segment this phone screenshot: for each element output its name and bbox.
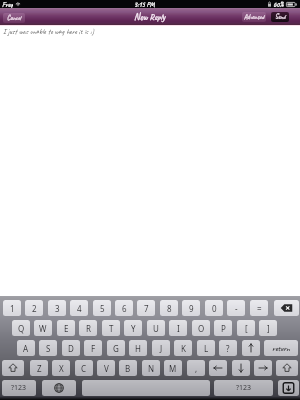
button[interactable]: Shift (276, 360, 298, 376)
staticText: T (109, 323, 114, 334)
button[interactable]: Left (209, 360, 227, 376)
button[interactable]: V (97, 360, 115, 376)
staticText: J (160, 343, 163, 354)
staticText: Freq (2, 0, 13, 8)
staticText: ?123 (11, 383, 27, 393)
button[interactable]: 9 (182, 300, 200, 316)
staticText: E (64, 323, 69, 334)
button[interactable]: Cancel (3, 13, 25, 23)
staticText: ?123 (236, 383, 252, 393)
button[interactable]: J (152, 340, 170, 356)
staticText: H (135, 343, 141, 354)
button[interactable]: ?123 (214, 380, 273, 396)
button[interactable]: 6 (115, 300, 133, 316)
button[interactable]: Q (12, 320, 30, 336)
staticText: W (39, 323, 47, 334)
staticText: F (91, 343, 96, 354)
button[interactable]: C (75, 360, 93, 376)
staticText: [ (245, 323, 248, 334)
staticText: P (221, 323, 226, 334)
button[interactable]: return (264, 340, 298, 356)
staticText: G (113, 343, 119, 354)
button[interactable]: 4 (70, 300, 88, 316)
button[interactable]: W (34, 320, 52, 336)
staticText: B (125, 363, 131, 374)
button[interactable]: R (79, 320, 97, 336)
button[interactable]: D (62, 340, 80, 356)
button[interactable]: F (84, 340, 102, 356)
staticText: L (204, 343, 209, 354)
button[interactable]: H (129, 340, 147, 356)
staticText: M (169, 363, 177, 374)
button[interactable]: 7 (137, 300, 155, 316)
staticText: U (153, 323, 159, 334)
staticText: - (235, 303, 238, 314)
button[interactable]: L (197, 340, 215, 356)
button[interactable]: ] (259, 320, 277, 336)
button[interactable]: [ (237, 320, 255, 336)
staticText: ] (267, 323, 270, 334)
button[interactable]: 0 (205, 300, 223, 316)
button[interactable]: Z (30, 360, 48, 376)
staticText: 1 (10, 303, 15, 314)
staticText: R (86, 323, 91, 334)
button[interactable]: U (147, 320, 165, 336)
button[interactable]: Shift (2, 360, 24, 376)
button[interactable]: S (39, 340, 57, 356)
staticText: return (272, 343, 290, 353)
button[interactable]: Hide keyboard (278, 380, 299, 396)
button[interactable]: Space (82, 380, 210, 396)
button[interactable]: Up (242, 340, 260, 356)
button[interactable]: ?123 (2, 380, 36, 396)
staticText: 3:15 PM (134, 0, 155, 8)
button[interactable]: 2 (25, 300, 43, 316)
button[interactable]: G (107, 340, 125, 356)
staticText: N (148, 363, 155, 374)
button[interactable]: Down (232, 360, 250, 376)
button[interactable]: - (227, 300, 245, 316)
staticText: Cancel (7, 14, 21, 22)
staticText: Z (37, 363, 42, 374)
staticText: S (46, 343, 51, 354)
staticText: 2 (32, 303, 37, 314)
staticText: K (181, 343, 186, 354)
staticText: V (104, 363, 109, 374)
staticText: D (68, 343, 74, 354)
staticText: 7 (144, 303, 149, 314)
staticText: Q (18, 323, 25, 334)
staticText: Y (131, 323, 136, 334)
staticText: 9 (189, 303, 194, 314)
staticText: C (81, 363, 87, 374)
button[interactable]: Backspace (274, 300, 299, 316)
button[interactable]: , (187, 360, 205, 376)
staticText: = (257, 303, 262, 314)
button[interactable]: Advanced (242, 12, 266, 22)
staticText: Send (275, 13, 286, 21)
button[interactable]: M (164, 360, 182, 376)
button[interactable]: Send (271, 12, 289, 22)
button[interactable]: O (192, 320, 210, 336)
button[interactable]: K (174, 340, 192, 356)
button[interactable]: ? (219, 340, 237, 356)
button[interactable]: N (142, 360, 160, 376)
button[interactable]: B (119, 360, 137, 376)
button[interactable]: E (57, 320, 75, 336)
button[interactable]: Change language (42, 380, 76, 396)
staticText: , (195, 363, 198, 374)
staticText: 4 (77, 303, 82, 314)
button[interactable]: Y (124, 320, 142, 336)
button[interactable]: T (102, 320, 120, 336)
staticText: I (177, 323, 180, 334)
button[interactable]: I (169, 320, 187, 336)
button[interactable]: 5 (93, 300, 111, 316)
button[interactable]: 8 (160, 300, 178, 316)
button[interactable]: Right (254, 360, 272, 376)
button[interactable]: X (52, 360, 70, 376)
button[interactable]: = (250, 300, 268, 316)
button[interactable]: 3 (48, 300, 66, 316)
staticText: 5 (100, 303, 105, 314)
button[interactable]: 1 (3, 300, 21, 316)
button[interactable]: P (214, 320, 232, 336)
button[interactable]: A (17, 340, 35, 356)
staticText: Advanced (244, 13, 265, 21)
